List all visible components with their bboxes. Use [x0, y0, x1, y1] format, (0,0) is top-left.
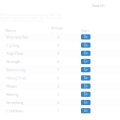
- button[interactable]: Strength: [0, 57, 120, 66]
- staticText: Search: [92, 3, 104, 8]
- button[interactable]: Hiking Trail: [0, 74, 120, 82]
- staticText: 4: [57, 59, 59, 64]
- button[interactable]: Cooldown: [0, 107, 120, 115]
- button[interactable]: Pilates: [0, 82, 120, 90]
- staticText: Go: [84, 101, 88, 104]
- staticText: 2: [57, 51, 59, 56]
- button[interactable]: Stretching: [0, 98, 120, 107]
- button[interactable]: Swimming: [0, 66, 120, 74]
- staticText: Go: [84, 76, 88, 80]
- staticText: Go: [84, 35, 88, 39]
- staticText: Go: [84, 60, 88, 63]
- staticText: Rowing: [6, 92, 18, 97]
- button[interactable]: Search: [92, 3, 104, 8]
- staticText: Pilates: [6, 83, 17, 89]
- staticText: Start: [81, 28, 89, 33]
- staticText: Cooldown: [6, 108, 23, 113]
- staticText: 1: [57, 67, 59, 72]
- staticText: Stretching: [6, 100, 23, 105]
- staticText: Go: [84, 109, 88, 112]
- staticText: Strength: [6, 59, 20, 64]
- staticText: Swimming: [6, 67, 25, 72]
- staticText: Go: [84, 68, 88, 71]
- button[interactable]: Cycling: [0, 41, 120, 49]
- staticText: 6: [57, 75, 59, 80]
- staticText: Go: [84, 84, 88, 88]
- staticText: Morning Run: [6, 34, 28, 39]
- staticText: Go: [84, 43, 88, 47]
- staticText: Yoga Flow: [6, 51, 23, 56]
- staticText: Cycling: [6, 42, 19, 48]
- staticText: 3: [57, 34, 59, 39]
- staticText: Minutes: [51, 25, 64, 36]
- staticText: Name: [5, 28, 16, 33]
- staticText: 3: [57, 83, 59, 89]
- staticText: 4: [57, 100, 59, 105]
- staticText: 5: [57, 42, 59, 48]
- staticText: Go: [84, 51, 88, 55]
- button[interactable]: Yoga Flow: [0, 49, 120, 57]
- button[interactable]: Rowing: [0, 90, 120, 98]
- staticText: 1: [57, 108, 59, 113]
- staticText: Hiking Trail: [6, 75, 26, 80]
- staticText: Go: [84, 92, 88, 96]
- staticText: 2: [57, 92, 59, 97]
- button[interactable]: Morning Run: [0, 33, 120, 41]
